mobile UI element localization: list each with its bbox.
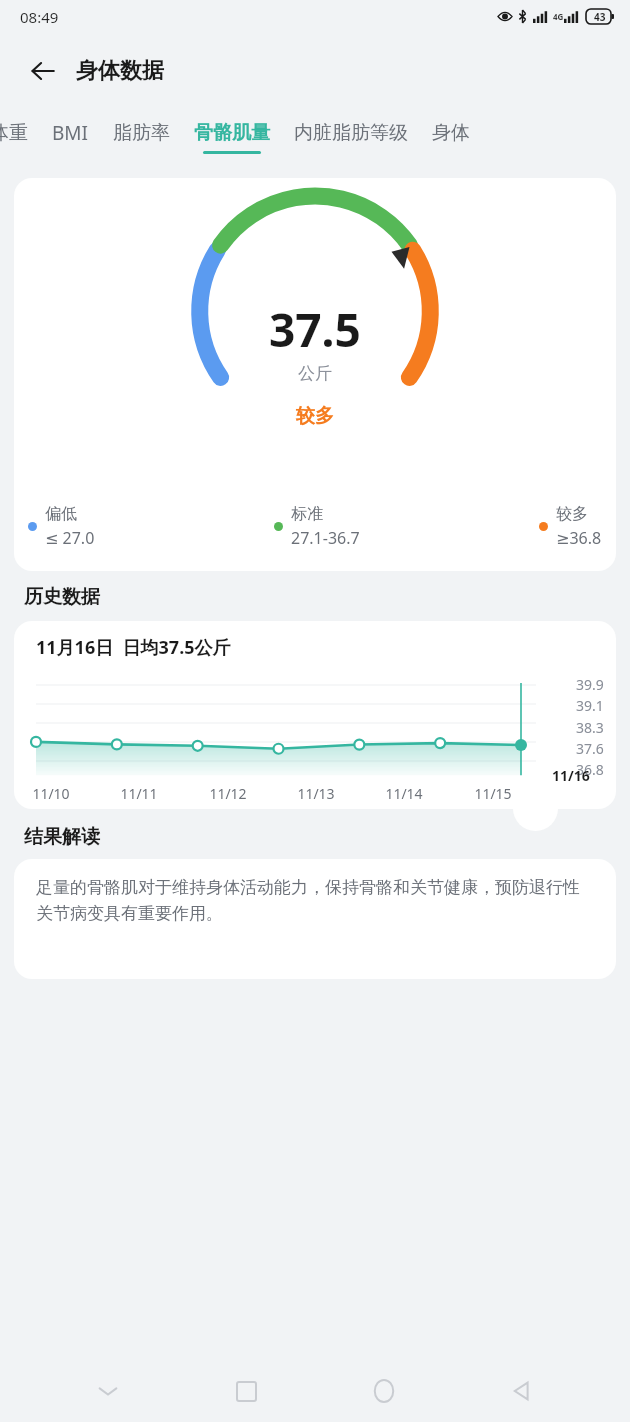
button[interactable]: 体重 — [0, 121, 28, 154]
staticText: 37.6 — [576, 739, 604, 758]
staticText: BMI — [52, 120, 89, 146]
staticText: 体重 — [0, 121, 28, 145]
staticText: 37.5 — [269, 298, 361, 361]
staticText: 结果解读 — [24, 825, 100, 849]
staticText: 较多 — [296, 404, 334, 428]
button[interactable]: 骨骼肌量 — [194, 121, 270, 154]
staticText: 11/16 — [552, 766, 590, 785]
staticText: 足量的骨骼肌对于维持身体活动能力，保持骨骼和关节健康，预防退行性关节病变具有重要… — [36, 877, 594, 924]
staticText: 11/15 — [464, 784, 522, 803]
staticText: 较多 — [556, 504, 588, 524]
button[interactable]: 内脏脂肪等级 — [294, 121, 408, 154]
staticText: 11/14 — [375, 784, 433, 803]
staticText: 27.1-36.7 — [291, 527, 360, 549]
button[interactable]: Hide keyboard — [78, 1361, 138, 1421]
staticText: 内脏脂肪等级 — [294, 121, 408, 145]
staticText: 43 — [594, 10, 606, 24]
staticText: 11/13 — [287, 784, 345, 803]
staticText: ≥36.8 — [556, 527, 602, 549]
button[interactable]: BMI — [52, 120, 89, 155]
staticText: 4G — [553, 11, 564, 22]
staticText: 身体数据 — [76, 57, 164, 85]
staticText: 身体 — [432, 121, 470, 145]
staticText: 39.9 — [576, 675, 604, 694]
button[interactable]: Recents — [216, 1361, 276, 1421]
staticText: 11月16日 日均37.5公斤 — [36, 635, 231, 660]
staticText: ≤ 27.0 — [45, 527, 95, 549]
button[interactable]: Back — [492, 1361, 552, 1421]
button[interactable]: Home — [354, 1361, 414, 1421]
staticText: 11/10 — [22, 784, 80, 803]
staticText: 38.3 — [576, 718, 604, 737]
staticText: 39.1 — [576, 696, 604, 715]
button[interactable]: Back — [20, 48, 66, 94]
button[interactable]: 身体 — [432, 121, 470, 154]
staticText: 公斤 — [298, 363, 332, 384]
staticText: 08:49 — [20, 7, 59, 27]
staticText: 脂肪率 — [113, 121, 170, 145]
button[interactable]: 足量的骨骼肌对于维持身体活动能力，保持骨骼和关节健康，预防退行性关节病变具有重要… — [14, 859, 616, 979]
staticText: 标准 — [291, 504, 323, 524]
staticText: 36.8 — [576, 760, 604, 779]
staticText: 骨骼肌量 — [194, 121, 270, 145]
button[interactable]: More — [513, 786, 558, 831]
button[interactable]: 脂肪率 — [113, 121, 170, 154]
staticText: 11/12 — [199, 784, 257, 803]
staticText: 历史数据 — [24, 585, 100, 609]
staticText: 11/11 — [110, 784, 168, 803]
staticText: 偏低 — [45, 504, 77, 524]
